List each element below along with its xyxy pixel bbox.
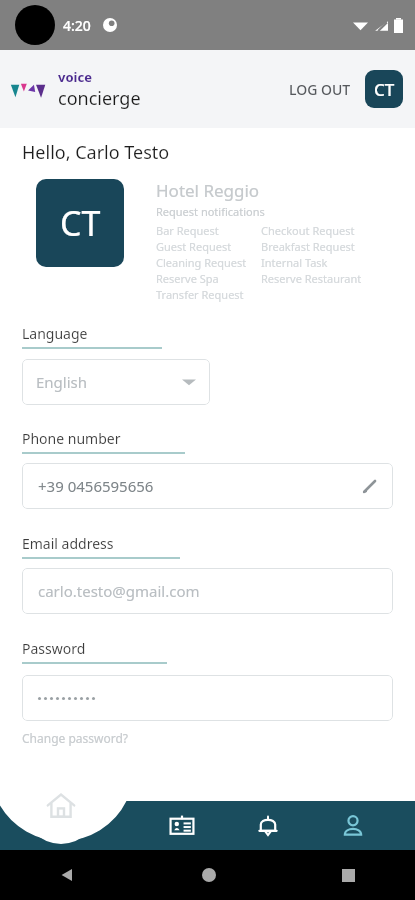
staticText: English [36, 372, 88, 392]
staticText: concierge [58, 86, 141, 111]
staticText: +39 0456595656 [38, 476, 154, 496]
staticText: Breakfast Request [261, 239, 355, 254]
staticText: Email address [22, 534, 114, 553]
button[interactable]: LOG OUT [285, 74, 355, 105]
staticText: Reserve Spa [156, 271, 219, 286]
staticText: 4:20 [63, 16, 91, 35]
other: Edit phone number [361, 477, 379, 495]
staticText: Cleaning Request [156, 255, 247, 270]
button[interactable]: +39 0456595656 [22, 463, 393, 509]
button[interactable]: Profile [329, 802, 377, 850]
staticText: Change password? [22, 730, 129, 746]
staticText: Phone number [22, 429, 121, 448]
staticText: Bar Request [156, 223, 219, 238]
staticText: Transfer Request [156, 287, 244, 302]
staticText: carlo.testo@gmail.com [38, 581, 200, 601]
staticText: CT [60, 200, 101, 246]
button[interactable]: CT [365, 70, 403, 108]
staticText: Guest Request [156, 239, 232, 254]
button[interactable]: CT [36, 179, 124, 267]
staticText: Hotel Reggio [156, 179, 260, 202]
button[interactable]: English [22, 359, 210, 405]
staticText: Hello, Carlo Testo [22, 140, 170, 165]
button[interactable]: carlo.testo@gmail.com [22, 568, 393, 614]
staticText: Password [22, 639, 86, 658]
staticText: Checkout Request [261, 223, 355, 238]
staticText: Internal Task [261, 255, 328, 270]
button[interactable]: Cards [158, 802, 206, 850]
staticText: voice [58, 68, 92, 86]
staticText: CT [374, 78, 395, 101]
button[interactable]: Home [23, 768, 99, 844]
button[interactable]: Change password? [22, 730, 129, 746]
staticText: Reserve Restaurant [261, 271, 362, 286]
button[interactable]: Notifications [244, 802, 292, 850]
staticText: LOG OUT [289, 80, 351, 99]
button[interactable] [22, 675, 393, 721]
staticText: Request notifications [156, 204, 265, 219]
staticText: Language [22, 324, 88, 343]
